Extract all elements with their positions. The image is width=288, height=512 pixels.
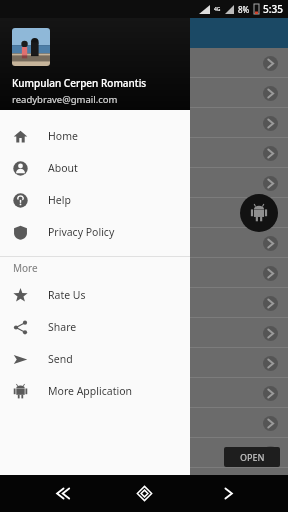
button[interactable]: Recents — [205, 475, 251, 512]
button[interactable] — [0, 138, 288, 168]
staticText: 8% — [238, 4, 250, 15]
staticText: readybrave@gmail.com — [12, 93, 118, 106]
button[interactable]: OPEN — [224, 447, 280, 467]
staticText: Rate Us — [48, 288, 86, 302]
button[interactable]: About — [0, 152, 190, 184]
button[interactable] — [0, 78, 288, 108]
button[interactable]: Home — [121, 475, 167, 512]
button[interactable] — [0, 168, 288, 198]
staticText: Home — [48, 129, 78, 143]
staticText: Cerita yang Ku ... — [10, 206, 98, 221]
button[interactable] — [0, 288, 288, 318]
staticText: Share — [48, 320, 77, 334]
button[interactable]: Add — [240, 194, 278, 232]
button[interactable]: Home — [121, 475, 167, 512]
staticText: More Application — [48, 384, 132, 398]
button[interactable]: Back — [38, 475, 84, 512]
button[interactable] — [0, 378, 288, 408]
button[interactable]: Help — [0, 184, 190, 216]
staticText: 5:35 — [263, 2, 283, 16]
button[interactable] — [0, 408, 288, 438]
staticText: Privacy Policy — [48, 225, 115, 239]
button[interactable]: Kumpulan Cerpen Romantis — [0, 18, 190, 110]
button[interactable] — [0, 228, 288, 258]
button[interactable]: Rate Us — [0, 279, 190, 311]
staticText: Kisah Perhatian — [10, 56, 91, 71]
button[interactable]: Kisah Perhatian — [0, 48, 288, 78]
staticText: 4G — [214, 6, 221, 13]
button[interactable]: Home — [0, 120, 190, 152]
staticText: Send — [48, 352, 73, 366]
button[interactable]: Send — [0, 343, 190, 375]
staticText: OPEN — [240, 451, 265, 463]
staticText: More — [13, 261, 38, 275]
staticText: ... — [10, 25, 20, 41]
button[interactable] — [0, 258, 288, 288]
button[interactable]: More Application — [0, 375, 190, 407]
button[interactable] — [0, 348, 288, 378]
button[interactable] — [0, 438, 288, 468]
button[interactable]: Privacy Policy — [0, 216, 190, 248]
button[interactable]: Back — [38, 475, 84, 512]
button[interactable]: Cerita yang Ku ... — [0, 198, 288, 228]
button[interactable] — [0, 108, 288, 138]
button[interactable] — [0, 318, 288, 348]
staticText: About — [48, 161, 78, 175]
button[interactable]: Share — [0, 311, 190, 343]
staticText: Kumpulan Cerpen Romantis — [12, 76, 147, 90]
button[interactable]: Recents — [205, 475, 251, 512]
staticText: Help — [48, 193, 71, 207]
